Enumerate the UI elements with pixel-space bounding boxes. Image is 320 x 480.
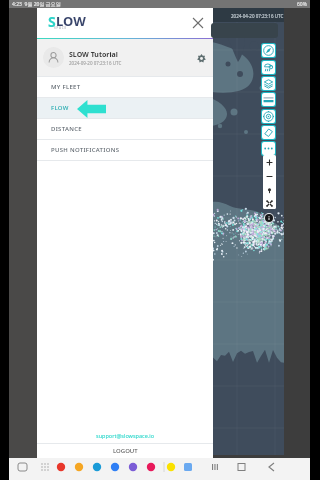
button[interactable]: Fullscreen [263,197,276,209]
staticText: LOGOUT [113,447,138,455]
button[interactable]: SLOW Tutorial [37,39,213,76]
button[interactable]: Region [262,126,275,139]
button[interactable]: FLOW [37,98,213,118]
button[interactable]: My location [263,183,276,197]
button[interactable]: Search [211,23,278,38]
staticText: PUSH NOTIFICATIONS [51,146,120,154]
button[interactable]: Close [189,14,207,32]
button[interactable]: DISTANCE [37,119,213,139]
button[interactable]: Navigate [262,44,275,57]
staticText: DISTANCE [51,125,82,133]
button[interactable]: PUSH NOTIFICATIONS [37,140,213,160]
staticText: 2024-09-20 07:23:16 UTC [69,60,122,66]
button[interactable]: Target [262,110,275,123]
staticText: SLOW Tutorial [69,50,118,60]
button[interactable]: support@slowspace.io [37,427,213,443]
button[interactable]: Zoom in [263,155,276,169]
staticText: 60% [297,1,307,8]
staticText: S [48,12,56,30]
button[interactable]: Zoom out [263,169,276,183]
staticText: MY FLEET [51,83,81,91]
button[interactable]: Weather [262,61,275,74]
button[interactable]: MY FLEET [37,77,213,97]
button[interactable]: Map attribution [265,214,273,222]
button[interactable]: Timeline [262,93,275,106]
staticText: FLOW [51,104,69,112]
staticText: 2024-04-20 07:23:16 UTC [231,13,284,19]
staticText: support@slowspace.io [96,432,154,439]
staticText: S P A C E [54,26,67,30]
button[interactable]: LOGOUT [37,444,213,458]
button[interactable]: Layers [262,77,275,90]
staticText: LOW [56,12,86,30]
staticText: 4:23 9월 20일 금요일 [12,1,61,8]
button[interactable]: More [262,142,275,155]
button[interactable]: Settings [194,51,208,65]
